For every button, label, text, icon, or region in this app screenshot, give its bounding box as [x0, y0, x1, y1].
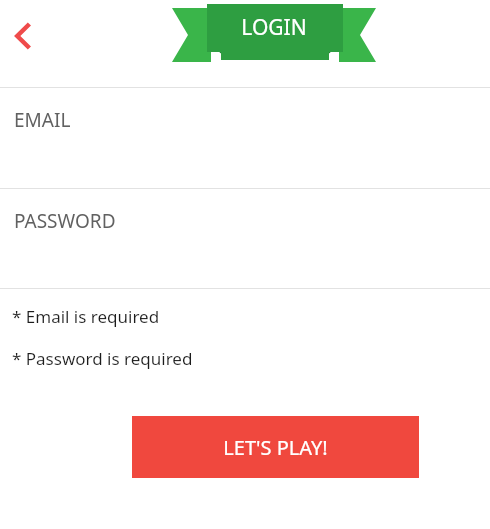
staticText: LOGIN: [241, 13, 307, 42]
staticText: * Email is required: [12, 305, 160, 328]
button[interactable]: LET'S PLAY!: [132, 416, 419, 478]
button[interactable]: EMAIL: [0, 88, 490, 188]
button[interactable]: LOGIN: [170, 0, 378, 66]
staticText: * Password is required: [12, 347, 193, 370]
staticText: PASSWORD: [14, 208, 116, 234]
staticText: LET'S PLAY!: [223, 434, 328, 461]
button[interactable]: Back: [2, 14, 46, 58]
staticText: EMAIL: [14, 107, 71, 133]
button[interactable]: PASSWORD: [0, 189, 490, 288]
